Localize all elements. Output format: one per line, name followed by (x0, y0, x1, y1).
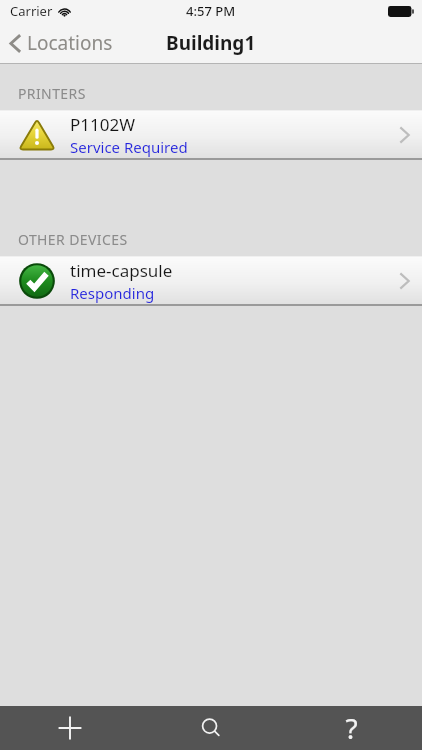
staticText: OTHER DEVICES (18, 230, 128, 249)
button[interactable]: P1102W (0, 111, 422, 158)
button[interactable]: time-capsule (0, 257, 422, 304)
staticText: P1102W (70, 113, 135, 136)
staticText: Service Required (70, 137, 188, 157)
staticText: Responding (70, 283, 155, 303)
staticText: PRINTERS (18, 84, 86, 103)
staticText: Carrier (10, 2, 53, 20)
button[interactable]: Help (281, 706, 422, 750)
staticText: ? (345, 709, 358, 747)
button[interactable]: Locations (0, 24, 125, 62)
staticText: time-capsule (70, 259, 173, 282)
button[interactable]: Add (0, 706, 140, 750)
staticText: Locations (27, 30, 113, 56)
staticText: 4:57 PM (186, 2, 236, 20)
button[interactable]: Search (140, 706, 281, 750)
staticText: Building1 (166, 30, 256, 56)
